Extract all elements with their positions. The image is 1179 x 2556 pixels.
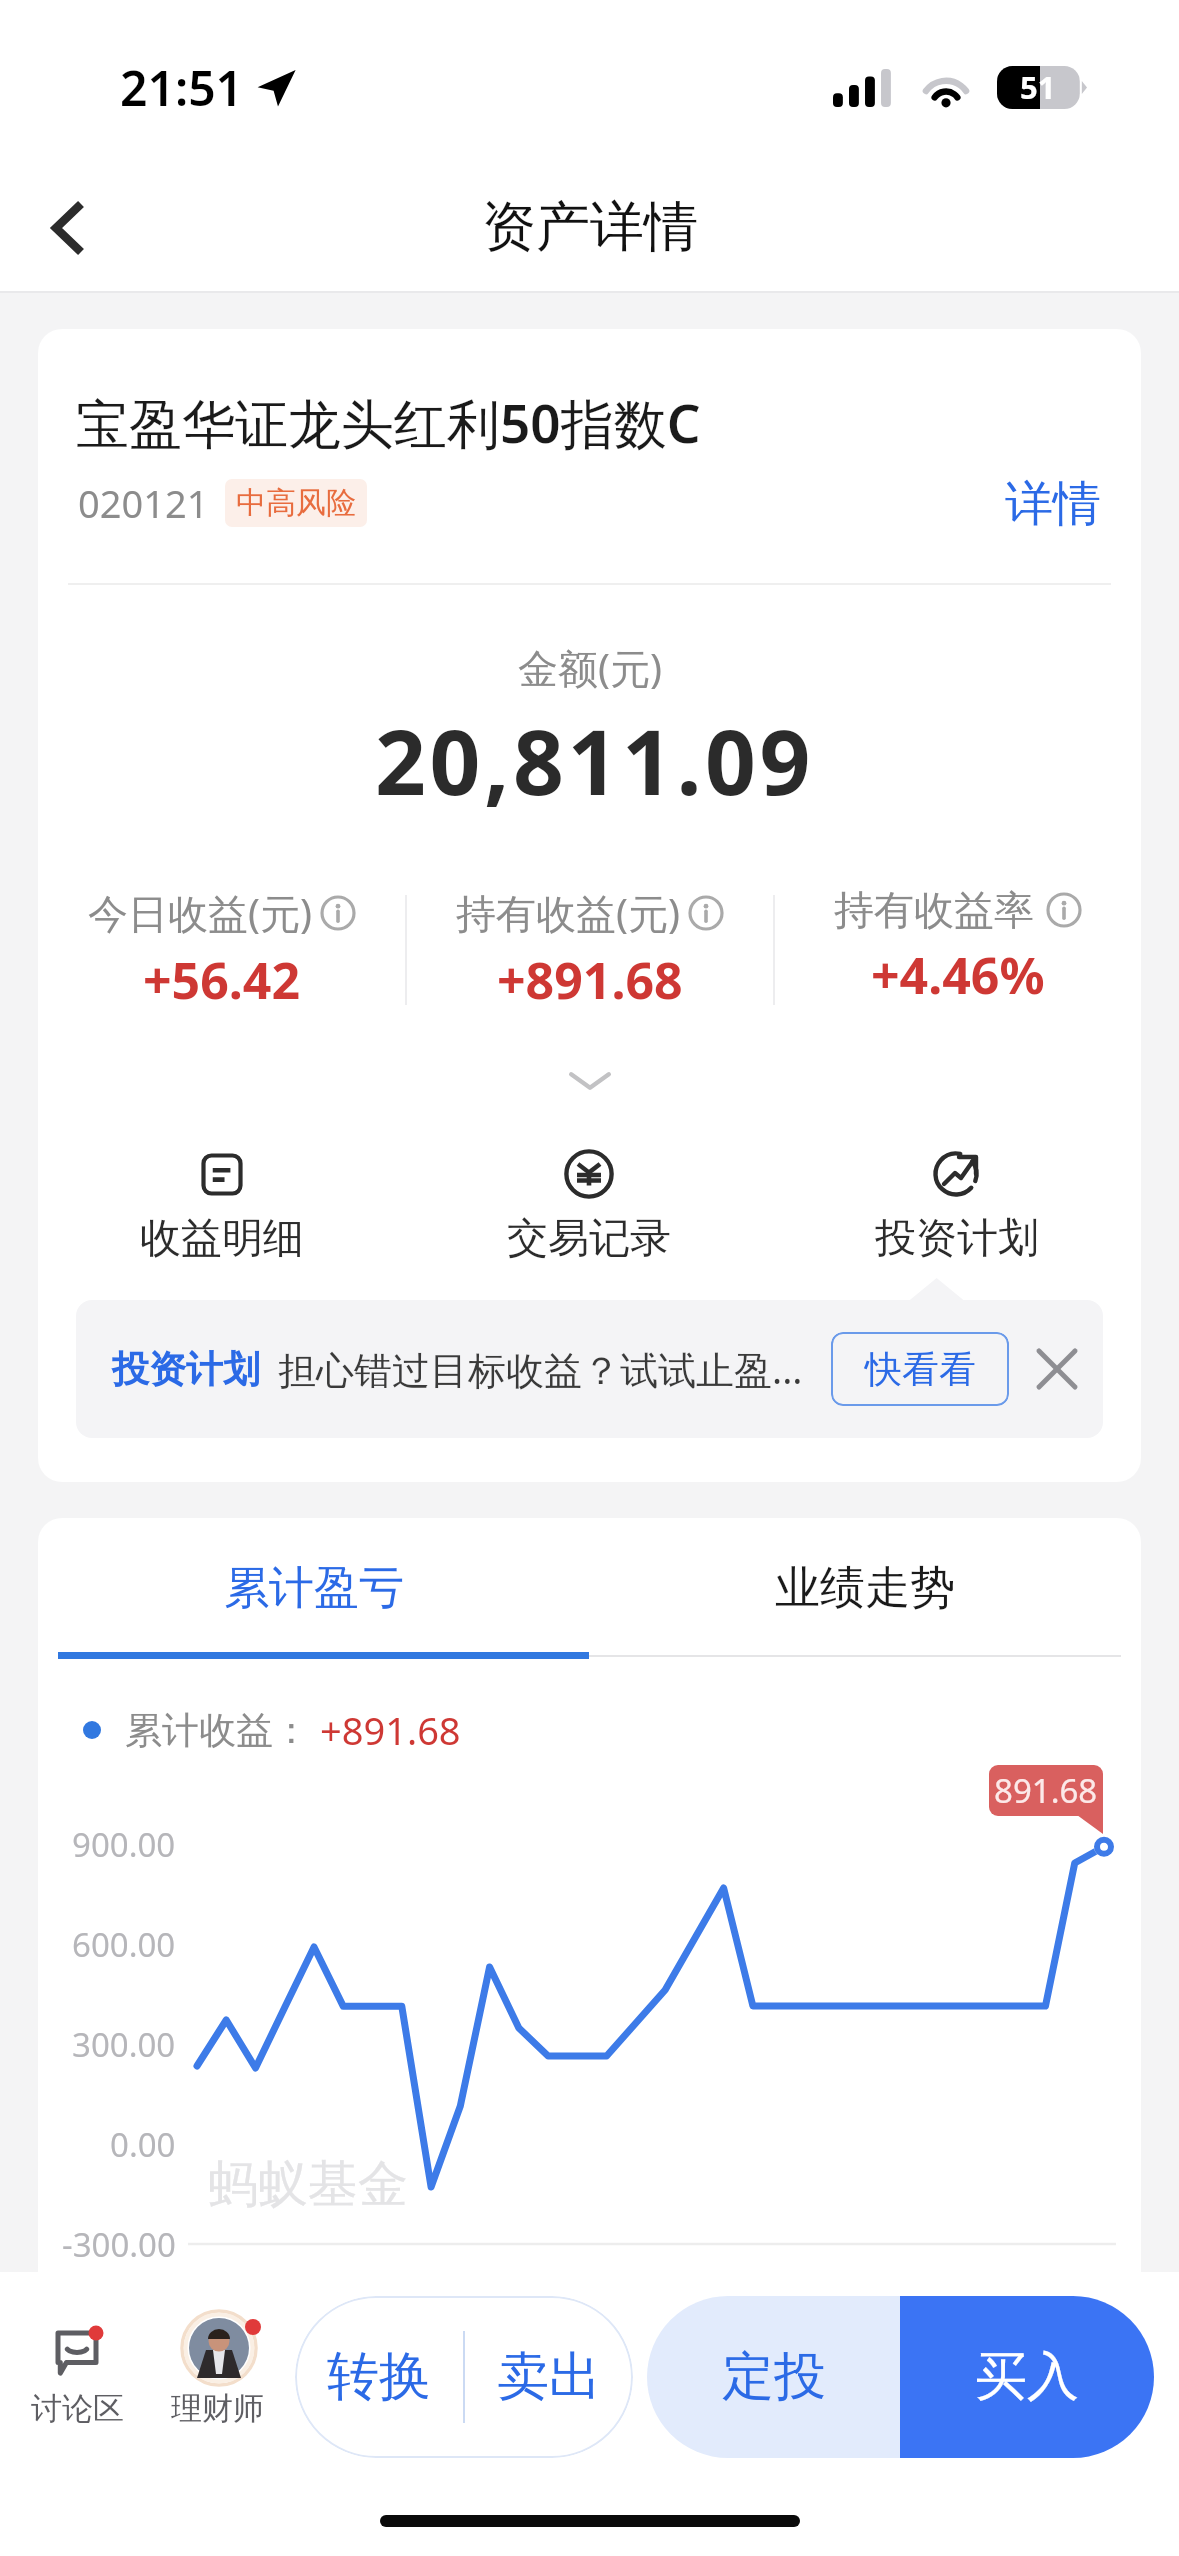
button[interactable]: Expand details — [530, 1051, 650, 1111]
button[interactable]: 投资计划 — [76, 1300, 1103, 1438]
staticText: 600.00 — [72, 1922, 176, 1967]
staticText: 交易记录 — [507, 1213, 671, 1265]
staticText: +891.68 — [320, 1704, 461, 1756]
staticText: 累计盈亏 — [224, 1560, 404, 1617]
button[interactable]: 详情 — [1005, 474, 1101, 532]
button[interactable]: Back — [22, 182, 114, 274]
staticText: 900.00 — [72, 1822, 176, 1867]
staticText: 持有收益(元) — [456, 885, 680, 940]
button[interactable]: 持有收益率 — [775, 885, 1141, 1009]
button[interactable]: 收益明细 — [38, 1149, 405, 1265]
button[interactable]: 讨论区 — [22, 2308, 132, 2438]
staticText: 宝盈华证龙头红利50指数C — [76, 386, 701, 458]
button[interactable]: 买入 — [900, 2296, 1154, 2458]
button[interactable]: Close — [1028, 1340, 1086, 1398]
staticText: 金额(元) — [518, 640, 662, 695]
staticText: 快看看 — [865, 1346, 976, 1393]
staticText: 020121 — [78, 477, 209, 529]
staticText: 详情 — [1005, 474, 1101, 532]
staticText: 定投 — [722, 2344, 826, 2410]
button[interactable]: 快看看 — [831, 1332, 1009, 1406]
staticText: -300.00 — [62, 2222, 176, 2267]
button[interactable]: 投资计划 — [773, 1149, 1141, 1265]
staticText: 投资计划 — [112, 1346, 260, 1393]
button[interactable]: 交易记录 — [405, 1149, 773, 1265]
staticText: +4.46% — [871, 941, 1045, 1009]
staticText: 投资计划 — [875, 1213, 1039, 1265]
staticText: 累计收益： — [125, 1707, 310, 1754]
staticText: 持有收益率 — [834, 885, 1034, 935]
staticText: 担心错过目标收益？试试止盈... — [278, 1343, 803, 1395]
button[interactable]: 持有收益(元) — [407, 885, 773, 1014]
staticText: 21:51 — [120, 55, 244, 120]
staticText: 讨论区 — [31, 2389, 124, 2428]
staticText: 转换 — [327, 2344, 431, 2410]
button[interactable]: 理财师 — [162, 2308, 272, 2438]
staticText: 中高风险 — [236, 484, 356, 522]
button[interactable]: 定投 — [647, 2296, 900, 2458]
button[interactable]: 累计盈亏 — [38, 1518, 589, 1658]
staticText: +56.42 — [143, 946, 301, 1014]
staticText: 业绩走势 — [775, 1560, 955, 1617]
button[interactable]: 转换 — [295, 2296, 463, 2458]
staticText: 20,811.09 — [375, 700, 815, 821]
staticText: 收益明细 — [140, 1213, 304, 1265]
button[interactable]: 今日收益(元) — [38, 885, 405, 1014]
staticText: 资产详情 — [482, 193, 698, 261]
staticText: 卖出 — [497, 2344, 601, 2410]
staticText: 蚂蚁基金 — [208, 2153, 408, 2216]
staticText: 0.00 — [110, 2122, 176, 2167]
staticText: 51 — [1020, 66, 1056, 108]
staticText: +891.68 — [497, 946, 683, 1014]
button[interactable]: 卖出 — [465, 2296, 633, 2458]
staticText: 300.00 — [72, 2022, 176, 2067]
staticText: 买入 — [975, 2344, 1079, 2410]
staticText: 今日收益(元) — [88, 885, 312, 940]
button[interactable]: 业绩走势 — [589, 1518, 1141, 1658]
staticText: 891.68 — [994, 1768, 1098, 1813]
staticText: 理财师 — [171, 2389, 264, 2428]
